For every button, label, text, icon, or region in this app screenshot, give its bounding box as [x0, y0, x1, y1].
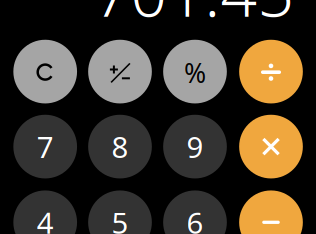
button[interactable]: Percent — [163, 40, 227, 103]
button[interactable]: Divide — [239, 40, 303, 103]
button[interactable]: 8 — [88, 115, 152, 178]
button[interactable]: 5 — [88, 190, 152, 234]
button[interactable]: Clear — [13, 40, 77, 103]
button[interactable]: Plus minus — [88, 40, 152, 103]
staticText: % — [184, 55, 206, 90]
staticText: 8 — [111, 127, 128, 166]
staticText: 6 — [186, 203, 203, 234]
button[interactable]: 7 — [13, 115, 77, 178]
button[interactable]: Multiply — [239, 115, 303, 178]
button[interactable]: 6 — [163, 190, 227, 234]
staticText: 5 — [111, 203, 128, 234]
staticText: 4 — [37, 203, 54, 234]
button[interactable]: 9 — [163, 115, 227, 178]
button[interactable]: Minus — [239, 190, 303, 234]
staticText: 7 — [37, 127, 54, 166]
button[interactable]: 4 — [13, 190, 77, 234]
staticText: 701.45 — [93, 0, 294, 34]
staticText: 9 — [186, 127, 203, 166]
